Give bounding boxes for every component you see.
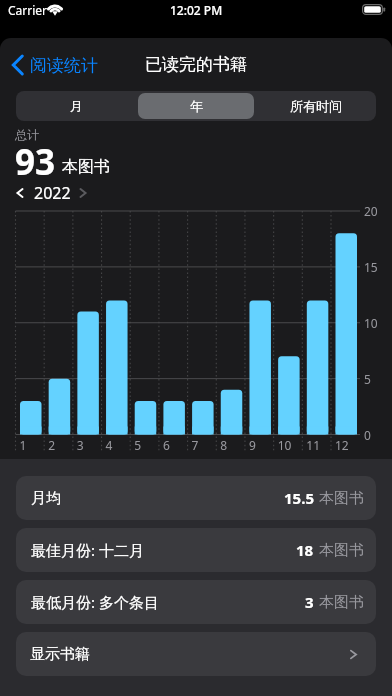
button[interactable]: 显示书籍	[16, 632, 376, 676]
button[interactable]: 年	[138, 93, 254, 119]
staticText: 18	[296, 540, 314, 560]
button[interactable]: 最佳月份: 十二月	[16, 528, 376, 572]
staticText: 2022	[34, 182, 71, 204]
staticText: 月	[70, 98, 83, 114]
staticText: 12:02 PM	[170, 2, 223, 18]
staticText: 总计	[15, 127, 39, 142]
button[interactable]: Previous year	[13, 186, 27, 200]
staticText: 本图书	[319, 489, 364, 508]
staticText: 3	[305, 592, 314, 612]
staticText: 年	[190, 98, 203, 114]
staticText: 最佳月份: 十二月	[31, 540, 144, 560]
staticText: 最低月份: 多个条目	[31, 592, 159, 612]
staticText: 本图书	[319, 541, 364, 560]
staticText: Carrier	[8, 2, 48, 18]
staticText: 显示书籍	[30, 645, 90, 664]
staticText: 所有时间	[290, 98, 342, 114]
button[interactable]: 所有时间	[258, 93, 374, 119]
staticText: 月均	[31, 489, 61, 508]
staticText: 阅读统计	[30, 55, 98, 76]
button[interactable]: 阅读统计	[6, 48, 102, 82]
button[interactable]: 最低月份: 多个条目	[16, 580, 376, 624]
staticText: 15.5	[284, 488, 314, 508]
staticText: 本图书	[62, 157, 110, 177]
button[interactable]: 月均	[16, 476, 376, 520]
staticText: 93	[15, 138, 56, 186]
button[interactable]: Next year	[76, 186, 90, 200]
staticText: 本图书	[319, 593, 364, 612]
staticText: 已读完的书籍	[145, 54, 247, 75]
button[interactable]: 月	[18, 93, 134, 119]
